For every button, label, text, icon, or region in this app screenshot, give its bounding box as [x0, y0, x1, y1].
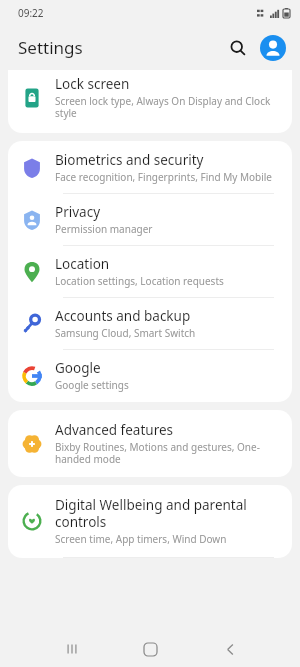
staticText: 09:22 — [18, 6, 44, 20]
button[interactable]: Search — [223, 33, 253, 63]
staticText: Settings — [18, 36, 83, 59]
button[interactable]: Advanced features — [8, 410, 292, 477]
staticText: Biometrics and security — [55, 151, 204, 169]
staticText: Advanced features — [55, 421, 174, 439]
button[interactable]: Google — [8, 350, 292, 402]
staticText: Google settings — [55, 378, 129, 392]
button[interactable]: Accounts and backup — [8, 298, 292, 349]
staticText: Screen lock type, Always On Display and … — [55, 94, 276, 120]
staticText: Location settings, Location requests — [55, 274, 224, 288]
button[interactable]: Account — [260, 35, 286, 61]
button[interactable]: Back — [214, 633, 246, 665]
staticText: Face recognition, Fingerprints, Find My … — [55, 170, 272, 184]
button[interactable]: Privacy — [8, 194, 292, 245]
button[interactable]: Lock screen — [8, 70, 292, 133]
staticText: Location — [55, 255, 110, 273]
staticText: Google — [55, 359, 101, 377]
staticText: Bixby Routines, Motions and gestures, On… — [55, 440, 276, 466]
staticText: Lock screen — [55, 75, 130, 93]
staticText: Accounts and backup — [55, 307, 191, 325]
staticText: Screen time, App timers, Wind Down — [55, 532, 227, 546]
staticText: Digital Wellbeing and parental controls — [55, 496, 276, 531]
staticText: Permission manager — [55, 222, 153, 236]
button[interactable]: Biometrics and security — [8, 141, 292, 193]
staticText: Samsung Cloud, Smart Switch — [55, 326, 196, 340]
button[interactable]: Recent apps — [56, 633, 88, 665]
button[interactable]: Home — [134, 633, 166, 665]
button[interactable]: Location — [8, 246, 292, 297]
button[interactable]: Digital Wellbeing and parental controls — [8, 485, 292, 557]
staticText: Privacy — [55, 203, 101, 221]
